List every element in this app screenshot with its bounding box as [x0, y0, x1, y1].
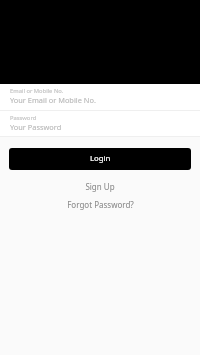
- staticText: Email or Mobile No.: [10, 87, 64, 95]
- button[interactable]: Forgot Password?: [61, 196, 140, 213]
- staticText: Login: [90, 153, 111, 164]
- button[interactable]: Password: [0, 111, 200, 136]
- staticText: Your Email or Mobile No.: [10, 95, 96, 105]
- staticText: Forgot Password?: [67, 199, 134, 210]
- button[interactable]: Login: [9, 148, 191, 170]
- button[interactable]: Email or Mobile No.: [0, 84, 200, 110]
- staticText: Password: [10, 114, 37, 122]
- staticText: Your Password: [10, 122, 62, 132]
- button[interactable]: Sign Up: [79, 178, 121, 195]
- staticText: Sign Up: [85, 181, 115, 192]
